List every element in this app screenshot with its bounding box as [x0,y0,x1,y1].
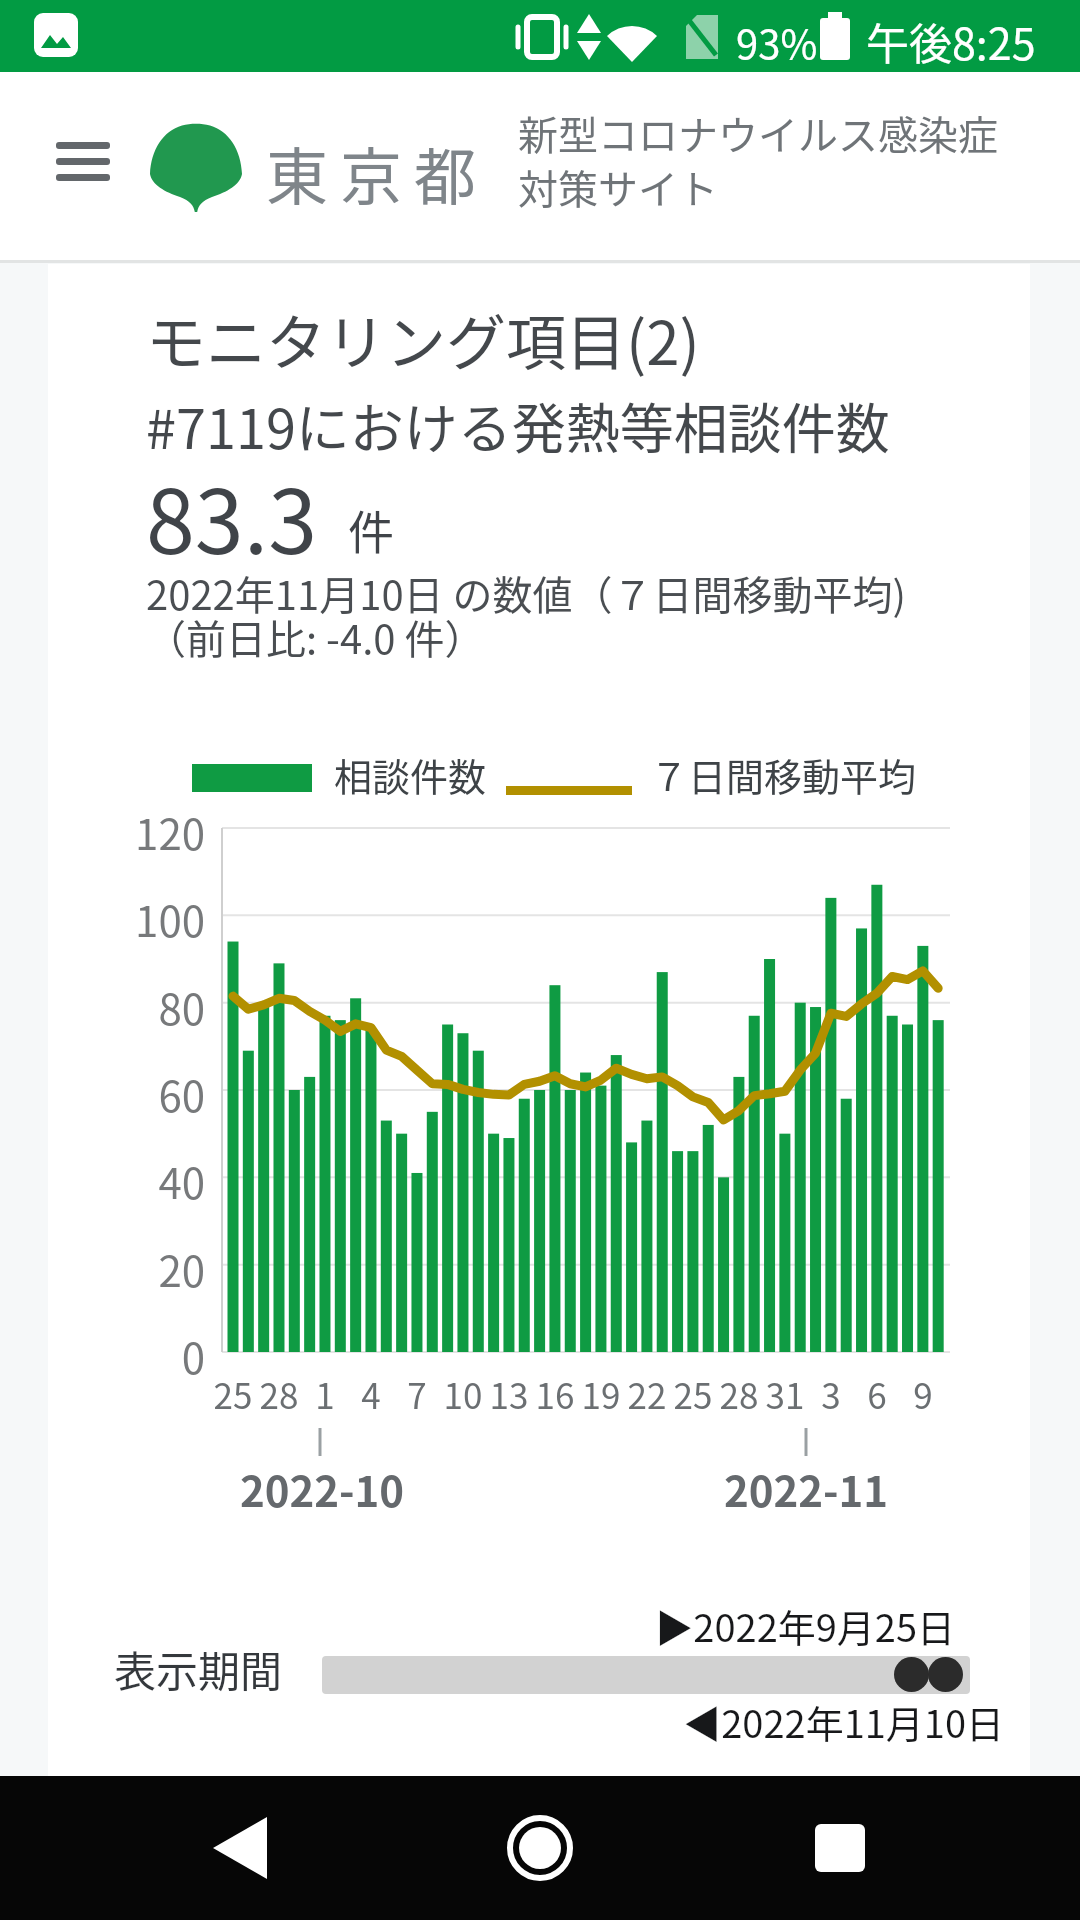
staticText: 午後8:25 [866,10,1036,72]
staticText: （前日比: -4.0 件） [146,608,485,666]
staticText: 4 [331,1368,411,1419]
button[interactable] [894,1657,929,1692]
staticText: 80 [95,976,205,1037]
staticText: 25 [653,1368,733,1419]
staticText: 東京都 [266,128,489,218]
staticText: 20 [95,1238,205,1299]
staticText: 19 [561,1368,641,1419]
button[interactable] [322,1656,970,1694]
staticText: 28 [699,1368,779,1419]
button[interactable] [780,1790,900,1906]
button[interactable] [480,1790,600,1906]
staticText: 60 [95,1063,205,1124]
button[interactable] [180,1790,300,1906]
staticText: #7119における発熱等相談件数 [146,386,890,464]
staticText: 10 [423,1368,503,1419]
staticText: 3 [791,1368,871,1419]
staticText: 1 [285,1368,365,1419]
staticText: 2022年11月10日 の数値（７日間移動平均) [146,564,907,622]
staticText: 83.3 [146,452,317,579]
staticText: 2022-11 [696,1458,916,1519]
staticText: 6 [837,1368,917,1419]
staticText: 40 [95,1150,205,1211]
staticText: 22 [607,1368,687,1419]
staticText: 7 [377,1368,457,1419]
staticText: ７日間移動平均 [650,747,917,802]
staticText: 16 [515,1368,595,1419]
button[interactable]: ▶2022年9月25日 [535,1598,955,1653]
staticText: 31 [745,1368,825,1419]
staticText: 100 [95,888,205,949]
staticText: 対策サイト [518,158,718,216]
staticText: 表示期間 [114,1638,283,1699]
button[interactable]: 東京都 [148,100,508,230]
button[interactable]: ◀2022年11月10日 [584,1694,1004,1749]
staticText: 9 [883,1368,963,1419]
staticText: 93% [736,13,818,71]
staticText: 相談件数 [334,747,487,802]
staticText: 25 [193,1368,273,1419]
staticText: 13 [469,1368,549,1419]
staticText: 28 [239,1368,319,1419]
staticText: 120 [95,801,205,862]
staticText: モニタリング項目(2) [146,295,700,382]
staticText: 新型コロナウイルス感染症 [518,104,998,162]
button[interactable] [44,130,122,196]
staticText: 0 [95,1325,205,1386]
button[interactable] [928,1657,963,1692]
staticText: 2022-10 [212,1458,432,1519]
staticText: 件 [348,496,394,563]
